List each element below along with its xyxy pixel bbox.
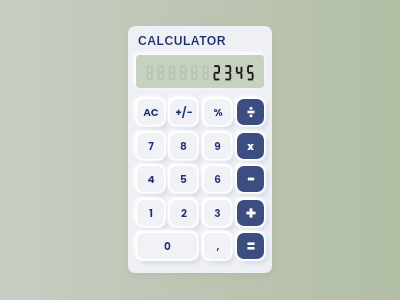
button[interactable]: Add bbox=[237, 200, 264, 226]
staticText: 3 bbox=[214, 206, 221, 221]
staticText: 8 bbox=[180, 139, 187, 154]
staticText: 4 bbox=[147, 172, 155, 187]
button[interactable]: +/- bbox=[170, 99, 197, 125]
staticText: 9 bbox=[214, 139, 221, 154]
button[interactable]: 7 bbox=[137, 133, 164, 159]
button[interactable]: Subtract bbox=[237, 166, 264, 192]
staticText: AC bbox=[143, 105, 159, 120]
staticText: x bbox=[247, 139, 254, 154]
button[interactable]: 2 bbox=[170, 200, 197, 226]
button[interactable]: 6 bbox=[204, 166, 231, 192]
button[interactable]: Equals bbox=[237, 233, 264, 259]
button[interactable]: AC bbox=[137, 99, 164, 125]
staticText: , bbox=[216, 239, 220, 254]
button[interactable]: 4 bbox=[137, 166, 164, 192]
button[interactable]: 1 bbox=[137, 200, 164, 226]
staticText: 5 bbox=[180, 172, 187, 187]
staticText: 6 bbox=[214, 172, 221, 187]
button[interactable]: 5 bbox=[170, 166, 197, 192]
button[interactable]: 3 bbox=[204, 200, 231, 226]
staticText: 1 bbox=[149, 206, 153, 221]
staticText: 7 bbox=[148, 139, 154, 154]
button[interactable]: % bbox=[204, 99, 231, 125]
button[interactable]: 0 bbox=[137, 233, 197, 259]
button[interactable]: 8 bbox=[170, 133, 197, 159]
button[interactable]: Divide bbox=[237, 99, 264, 125]
staticText: +/- bbox=[175, 105, 193, 120]
button[interactable]: x bbox=[237, 133, 264, 159]
staticText: 0 bbox=[164, 239, 171, 254]
button[interactable]: 9 bbox=[204, 133, 231, 159]
button[interactable]: , bbox=[204, 233, 231, 259]
staticText: CALCULATOR bbox=[138, 34, 226, 48]
staticText: 2 bbox=[181, 206, 187, 221]
staticText: % bbox=[213, 105, 223, 120]
